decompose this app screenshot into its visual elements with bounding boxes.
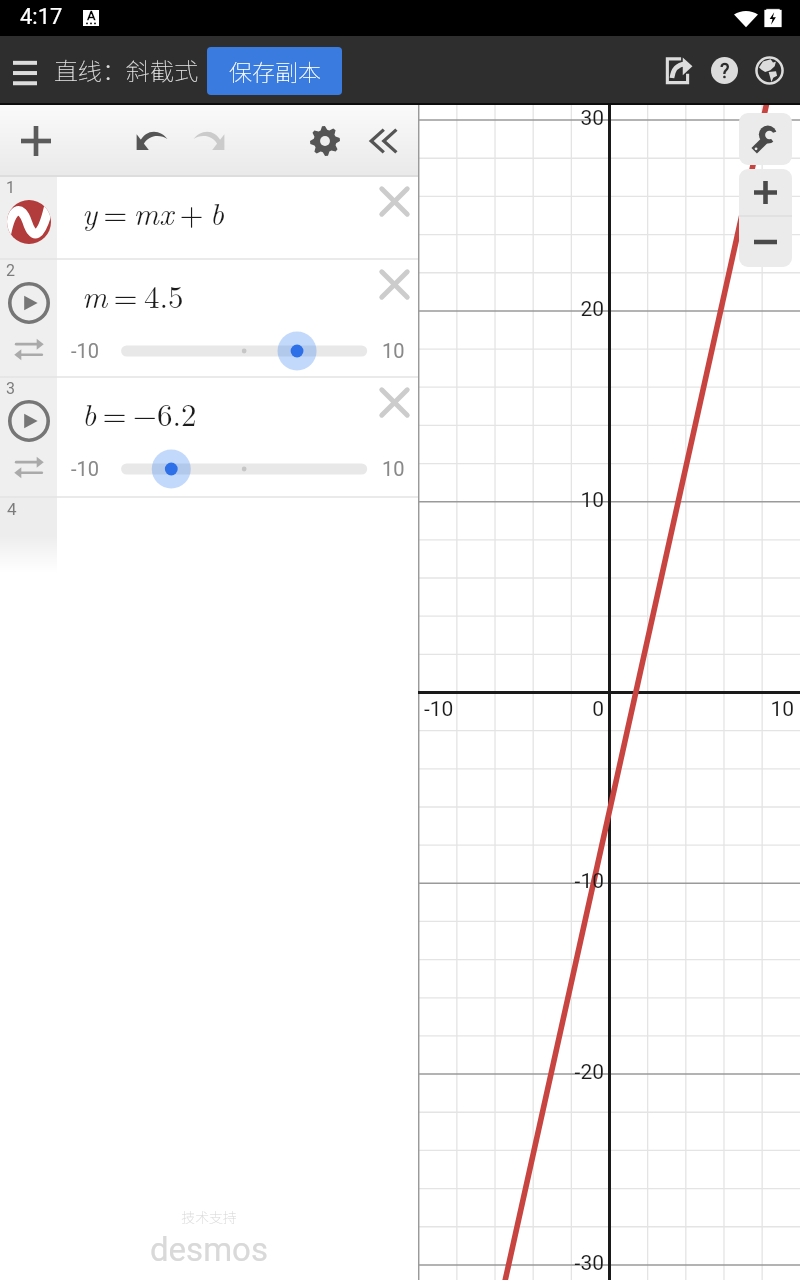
button[interactable]: Language xyxy=(747,48,792,93)
button[interactable]: Help xyxy=(702,48,747,93)
staticText: 保存副本 xyxy=(229,54,321,87)
staticText: ‑10 xyxy=(71,339,99,362)
staticText: 30 xyxy=(544,106,604,131)
staticText: 10 xyxy=(382,339,405,362)
staticText: 10 xyxy=(544,488,604,513)
staticText: -10 xyxy=(424,697,454,722)
staticText: desmos xyxy=(150,1230,268,1269)
button[interactable]: Undo xyxy=(128,115,176,163)
button[interactable]: Zoom out xyxy=(739,217,792,267)
button[interactable]: Zoom in xyxy=(739,169,792,216)
staticText: -20 xyxy=(544,1060,604,1085)
button[interactable]: y = mx + b xyxy=(57,177,418,260)
button[interactable]: Add expression xyxy=(12,117,60,165)
button[interactable]: Share xyxy=(657,48,702,93)
staticText: 3 xyxy=(6,379,15,398)
button[interactable]: Collapse panel xyxy=(358,117,406,165)
button[interactable] xyxy=(57,449,418,489)
staticText: 4 xyxy=(7,499,17,519)
staticText: 0 xyxy=(544,697,604,722)
staticText: 1 xyxy=(6,178,15,197)
staticText: 直线：斜截式 xyxy=(54,52,198,87)
staticText: A xyxy=(87,8,96,23)
button[interactable]: 保存副本 xyxy=(207,47,342,95)
button[interactable]: Delete expression xyxy=(370,177,418,225)
staticText: -30 xyxy=(544,1251,604,1276)
staticText: 10 xyxy=(734,697,794,722)
button[interactable]: b = −6.2 xyxy=(57,378,418,498)
button[interactable]: Delete expression xyxy=(370,260,418,308)
button[interactable]: Loop xyxy=(9,329,49,369)
staticText: 2 xyxy=(6,261,15,280)
staticText: m = 4.5 xyxy=(82,273,184,317)
button[interactable]: m = 4.5 xyxy=(57,260,418,378)
staticText: ‑10 xyxy=(71,457,99,480)
button[interactable]: Graph settings xyxy=(739,113,792,165)
staticText: -10 xyxy=(544,869,604,894)
button[interactable]: Loop xyxy=(9,447,49,487)
button[interactable]: Play xyxy=(7,281,51,325)
button[interactable]: Play xyxy=(7,399,51,443)
button[interactable]: Menu xyxy=(1,47,49,95)
staticText: 技术支持 xyxy=(181,1207,237,1227)
button[interactable]: Toggle graph xyxy=(7,200,51,244)
staticText: ? xyxy=(720,59,730,82)
staticText: b = −6.2 xyxy=(82,391,197,435)
button[interactable]: Redo xyxy=(185,115,233,163)
staticText: y = mx + b xyxy=(82,190,225,234)
staticText: 20 xyxy=(544,297,604,322)
button[interactable]: Settings xyxy=(301,117,349,165)
button[interactable] xyxy=(57,331,418,371)
staticText: 10 xyxy=(382,457,405,480)
button[interactable]: Delete expression xyxy=(370,378,418,426)
staticText: 4:17 xyxy=(20,4,63,30)
